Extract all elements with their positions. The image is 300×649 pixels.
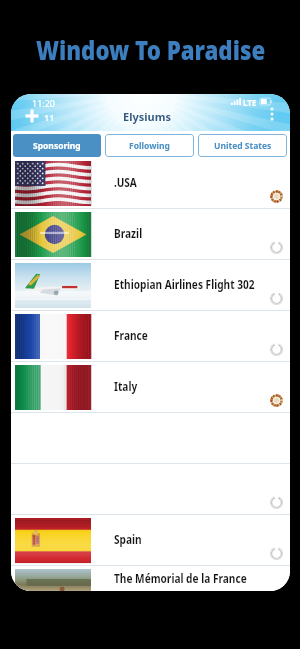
button[interactable] [11,464,290,515]
button[interactable] [11,413,290,464]
button[interactable]: Following [105,134,194,157]
staticText: Brazil [114,226,142,242]
button[interactable]: France [11,311,290,362]
button[interactable]: Italy [11,362,290,413]
staticText: Following [129,140,170,152]
button[interactable]: Ethiopian Airlines Flight 302 [11,260,290,311]
staticText: France [114,328,148,344]
button[interactable]: Sponsoring [13,134,101,157]
staticText: The Mémorial de la France [114,571,247,587]
staticText: 11:20 [32,97,56,109]
button[interactable]: United States [198,134,287,157]
staticText: 11 [44,111,55,123]
staticText: Window To Paradise [35,32,265,67]
button[interactable]: Add [23,107,41,125]
button[interactable]: The Mémorial de la France [11,566,290,591]
staticText: .USA [114,175,137,191]
button[interactable]: More options [265,107,279,121]
staticText: United States [214,140,272,152]
button[interactable]: Brazil [11,209,290,260]
staticText: Spain [114,532,142,548]
button[interactable]: Spain [11,515,290,566]
staticText: Elysiums [123,109,171,124]
button[interactable]: .USA [11,158,290,209]
staticText: LTE [243,97,257,108]
staticText: Ethiopian Airlines Flight 302 [114,277,255,293]
staticText: Sponsoring [33,140,81,152]
staticText: Italy [114,379,138,395]
